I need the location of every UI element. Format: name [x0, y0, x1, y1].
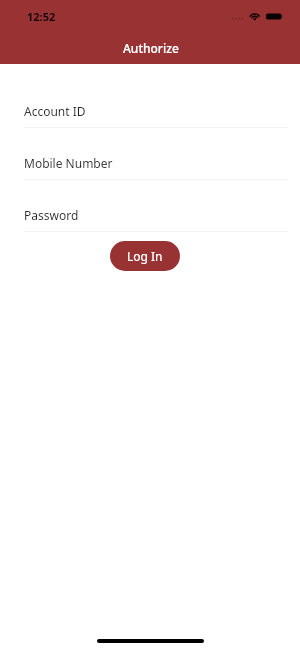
staticText: Account ID: [24, 103, 86, 119]
button[interactable]: Log In: [110, 241, 180, 271]
button[interactable]: Mobile Number: [24, 149, 288, 180]
staticText: 12:52: [27, 9, 56, 24]
staticText: Password: [24, 207, 79, 223]
staticText: Log In: [127, 248, 163, 264]
staticText: Authorize: [123, 40, 179, 56]
other: Wi-Fi: [249, 11, 261, 21]
other: Cellular signal: [231, 11, 246, 21]
button[interactable]: Password: [24, 201, 288, 232]
staticText: Mobile Number: [24, 155, 113, 171]
button[interactable]: Account ID: [24, 97, 288, 128]
other: Battery: [266, 11, 284, 21]
